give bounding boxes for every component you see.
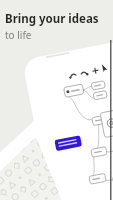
staticText: to life <box>5 28 32 42</box>
staticText: Bring your ideas <box>5 11 99 27</box>
